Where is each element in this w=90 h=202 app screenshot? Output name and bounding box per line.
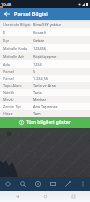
button[interactable]: Layers (0, 177, 15, 191)
button[interactable]: Back (11, 191, 23, 202)
staticText: Merkez (33, 97, 47, 102)
staticText: Üzerinde Bilgisi (3, 22, 33, 27)
button[interactable]: Recents (67, 191, 79, 202)
staticText: Tapu Alanı (3, 83, 33, 88)
button[interactable]: Zemin Tip (0, 103, 90, 110)
staticText: İlçe (3, 38, 33, 43)
button[interactable]: My location (30, 177, 45, 191)
button[interactable]: Mahalle Adı (0, 52, 90, 60)
staticText: Zemin Tip (3, 104, 33, 109)
staticText: Parsel (3, 69, 33, 74)
staticText: Kocaeli (33, 30, 46, 35)
button[interactable]: Hisse (0, 110, 90, 117)
staticText: Ana Taşınmaz (33, 104, 58, 109)
staticText: Gebze (33, 38, 45, 43)
button[interactable]: Back (0, 8, 14, 20)
staticText: 1234 (33, 62, 42, 67)
staticText: 1.234,56 (33, 76, 49, 81)
button[interactable]: Nitelik (0, 89, 90, 96)
staticText: Bina/SSY yoktur (33, 22, 62, 27)
staticText: Ada (3, 62, 33, 67)
staticText: Hisse (3, 111, 33, 116)
staticText: 10:48 (1, 2, 12, 7)
button[interactable]: Parsel (0, 68, 90, 75)
button[interactable]: Measure (45, 177, 60, 191)
button[interactable]: Tüm bilgileri göster (0, 117, 90, 128)
button[interactable]: Home (39, 191, 51, 202)
button[interactable]: Parsel (0, 75, 90, 82)
staticText: 5 (33, 69, 36, 74)
button[interactable]: Mahalle Kodu (0, 44, 90, 52)
staticText: Köşklüçeşme (33, 54, 57, 59)
staticText: Tam (33, 111, 41, 116)
button[interactable]: İlçe (0, 36, 90, 44)
staticText: Parsel (3, 76, 33, 81)
staticText: Tüm bilgileri göster (26, 119, 71, 126)
button[interactable]: Tapu Alanı (0, 82, 90, 89)
staticText: Tarla (33, 90, 42, 95)
staticText: Parsel Bilgisi (14, 10, 48, 18)
button[interactable]: More (75, 177, 90, 191)
staticText: Mevki (3, 97, 33, 102)
button[interactable]: Mevki (0, 96, 90, 103)
button[interactable]: Üzerinde Bilgisi (0, 20, 90, 28)
button[interactable]: Ada (0, 60, 90, 68)
staticText: Tarla ve Arsa (33, 83, 56, 88)
staticText: İl (3, 30, 33, 35)
button[interactable]: Draw (60, 177, 75, 191)
staticText: Mahalle Kodu (3, 46, 33, 51)
button[interactable]: Search (15, 177, 30, 191)
staticText: Mahalle Adı (3, 54, 33, 59)
staticText: 123456 (33, 46, 47, 51)
button[interactable]: İl (0, 28, 90, 36)
staticText: Nitelik (3, 90, 33, 95)
